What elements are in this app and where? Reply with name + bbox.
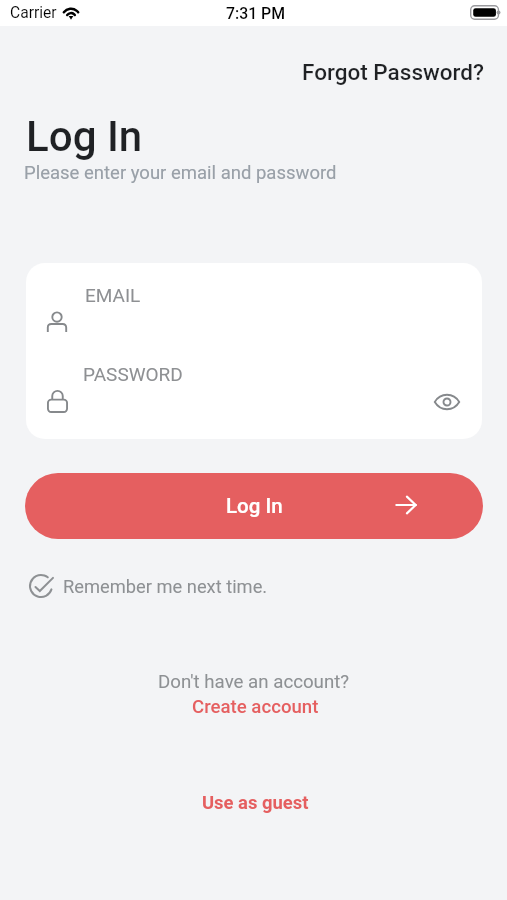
staticText: 7:31 PM (226, 4, 285, 23)
button[interactable]: Show password (422, 377, 472, 427)
button[interactable]: Create account (180, 694, 327, 720)
staticText: Log In (26, 112, 143, 161)
staticText: Remember me next time. (63, 576, 268, 597)
button[interactable]: Log In (25, 473, 483, 539)
staticText: PASSWORD (83, 363, 183, 385)
staticText: Forgot Password? (302, 59, 484, 85)
staticText: Log In (226, 494, 283, 518)
button[interactable]: EMAIL (26, 263, 482, 350)
staticText: Please enter your email and password (24, 162, 337, 184)
button[interactable]: Remember me next time. (23, 569, 276, 603)
staticText: Use as guest (202, 792, 309, 814)
button[interactable]: PASSWORD (26, 350, 482, 438)
staticText: Create account (192, 696, 319, 718)
staticText: EMAIL (85, 284, 141, 306)
button[interactable]: Use as guest (191, 790, 317, 816)
staticText: Carrier (10, 4, 57, 22)
staticText: Don't have an account? (158, 671, 350, 693)
button[interactable]: Forgot Password? (292, 53, 494, 91)
